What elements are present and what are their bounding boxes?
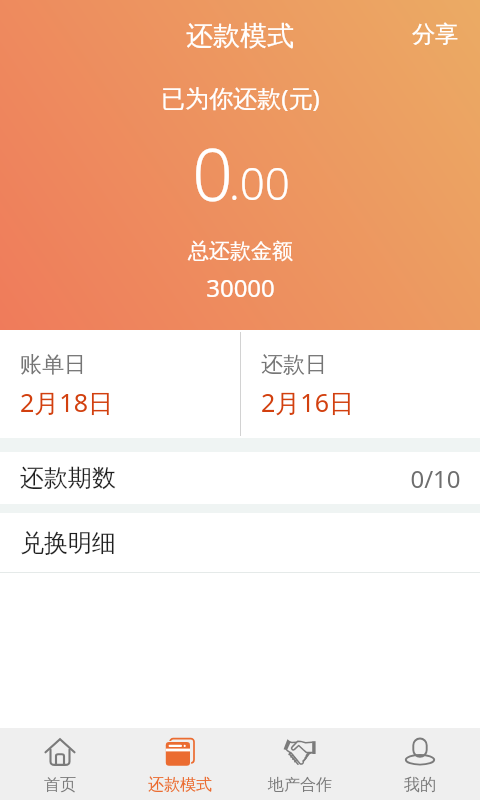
staticText: 我的 xyxy=(404,775,436,795)
staticText: 首页 xyxy=(44,775,76,795)
button[interactable]: 还款模式 xyxy=(120,728,240,800)
staticText: 兑换明细 xyxy=(20,528,116,558)
staticText: 还款模式 xyxy=(186,19,294,53)
button[interactable]: 还款期数 xyxy=(0,452,480,504)
staticText: 已为你还款(元) xyxy=(161,81,320,114)
staticText: .00 xyxy=(229,153,290,213)
staticText: 0 xyxy=(192,125,233,222)
button[interactable]: 还款日 xyxy=(240,330,480,438)
staticText: 还款日 xyxy=(261,351,327,379)
staticText: 2月16日 xyxy=(261,385,354,419)
staticText: 地产合作 xyxy=(268,775,332,795)
button[interactable]: 兑换明细 xyxy=(0,513,480,572)
button[interactable]: 分享 xyxy=(400,12,470,57)
staticText: 还款期数 xyxy=(20,463,116,493)
staticText: 总还款金额 xyxy=(188,238,293,264)
button[interactable]: 账单日 xyxy=(0,330,240,438)
staticText: 账单日 xyxy=(20,351,86,379)
staticText: 2月18日 xyxy=(20,385,113,419)
staticText: 分享 xyxy=(412,20,458,49)
button[interactable]: 我的 xyxy=(360,728,480,800)
staticText: 还款模式 xyxy=(148,775,212,795)
button[interactable]: 首页 xyxy=(0,728,120,800)
staticText: 30000 xyxy=(206,271,275,304)
button[interactable]: 地产合作 xyxy=(240,728,360,800)
staticText: 0/10 xyxy=(410,462,461,495)
